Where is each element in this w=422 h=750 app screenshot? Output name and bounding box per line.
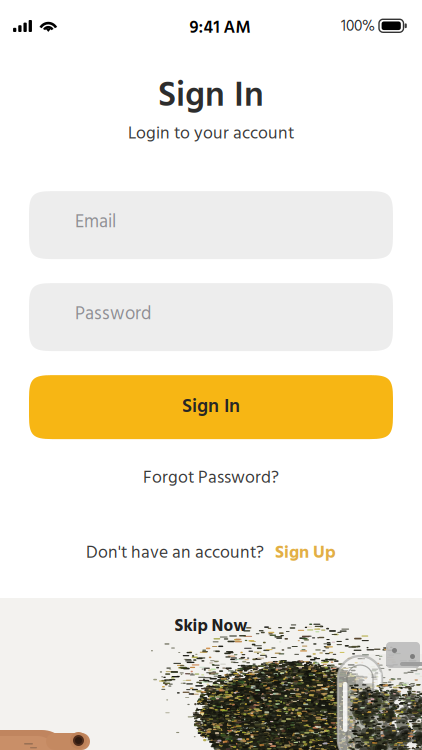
staticText: 100% [341, 14, 375, 39]
button[interactable]: Email [29, 191, 393, 259]
staticText: Sign In [182, 391, 240, 423]
staticText: Login to your account [128, 120, 294, 148]
button[interactable]: Skip Now [158, 607, 263, 646]
staticText: Forgot Password? [143, 464, 279, 492]
button[interactable]: Password [29, 283, 393, 351]
staticText: Don't have an account? [86, 539, 264, 567]
staticText: Sign Up [275, 539, 336, 567]
staticText: 9:41 AM [189, 14, 250, 42]
staticText: Email [75, 208, 116, 237]
button[interactable]: Sign Up [275, 539, 336, 567]
staticText: Skip Now [174, 613, 247, 640]
staticText: Sign In [158, 69, 264, 125]
button[interactable]: Sign In [29, 375, 393, 439]
staticText: Password [75, 300, 151, 329]
button[interactable]: Forgot Password? [143, 458, 279, 498]
